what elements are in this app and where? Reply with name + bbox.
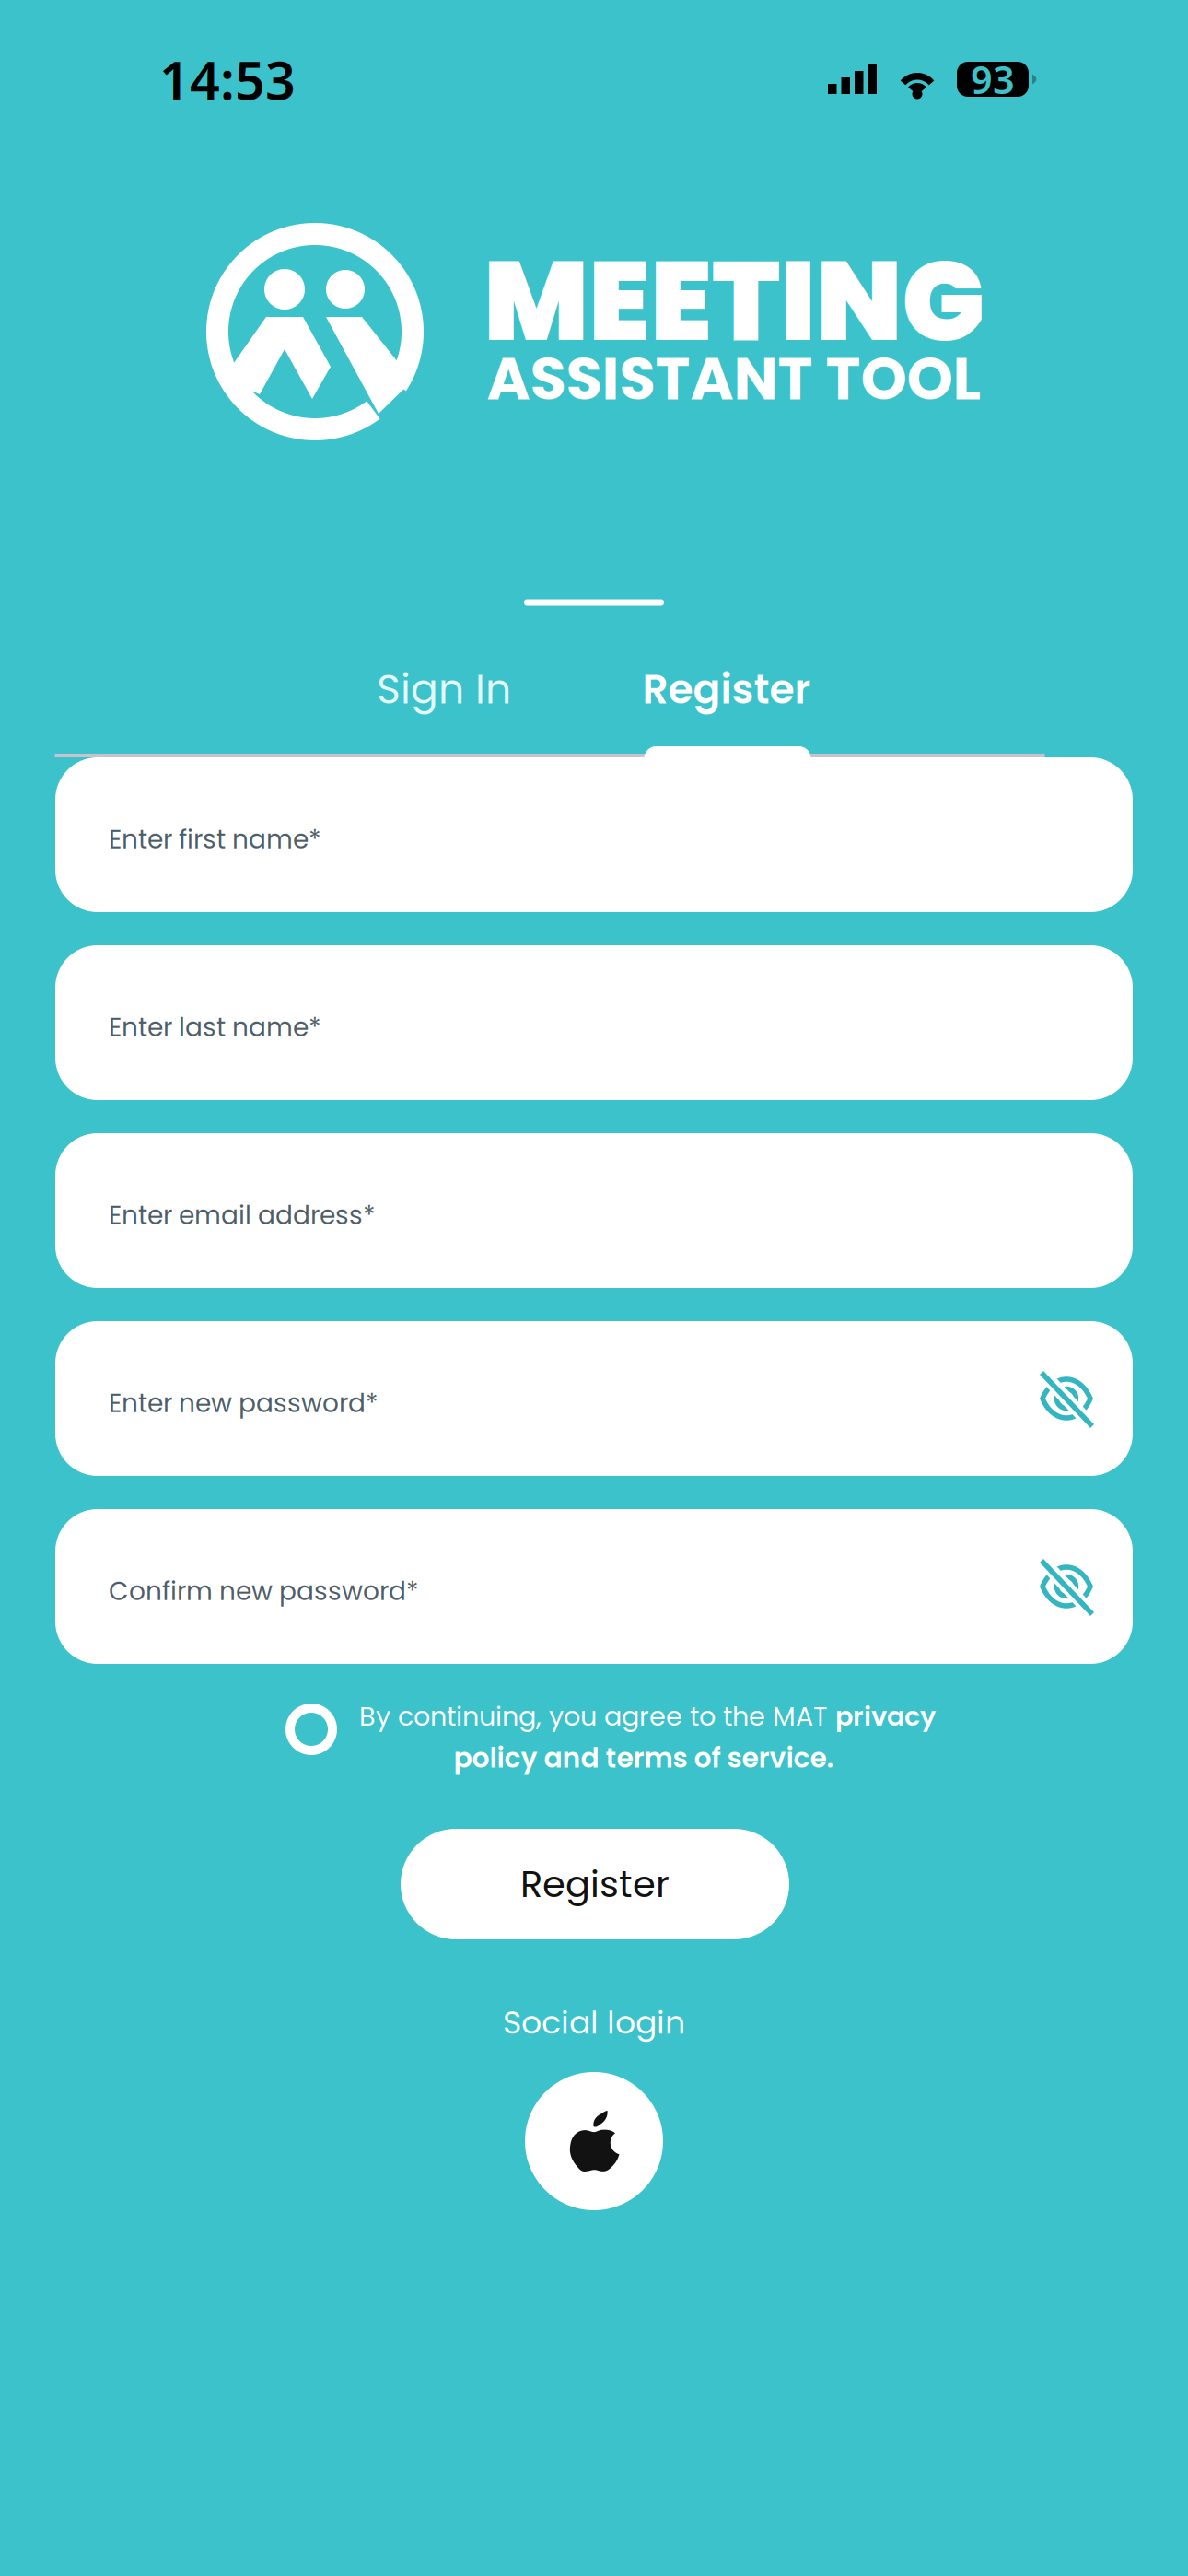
staticText: Sign In: [377, 661, 511, 718]
button[interactable]: Sign in with Apple: [525, 2072, 663, 2210]
staticText: 14:53: [159, 44, 296, 114]
button[interactable]: Enter new password*: [55, 1321, 1133, 1476]
staticText: Enter email address*: [109, 1197, 376, 1233]
button[interactable]: Confirm new password*: [55, 1509, 1133, 1664]
staticText: MEETING: [483, 224, 984, 379]
staticText: Social login: [503, 2000, 685, 2045]
staticText: By continuing, you agree to the MAT: [359, 1698, 835, 1735]
staticText: privacy: [835, 1698, 936, 1735]
staticText: 93: [971, 54, 1015, 105]
button[interactable]: Enter first name*: [55, 757, 1133, 912]
button[interactable]: Register: [598, 645, 856, 733]
staticText: Register: [642, 661, 811, 718]
staticText: ASSISTANT TOOL: [487, 337, 981, 420]
button[interactable]: Enter last name*: [55, 945, 1133, 1100]
staticText: policy and terms of service.: [454, 1739, 834, 1777]
staticText: Enter last name*: [109, 1009, 321, 1045]
staticText: Enter new password*: [109, 1385, 379, 1421]
staticText: Register: [520, 1858, 670, 1910]
button[interactable]: Register: [401, 1829, 789, 1939]
staticText: Enter first name*: [109, 821, 321, 857]
staticText: Confirm new password*: [109, 1573, 419, 1609]
button[interactable]: By continuing, you agree to the MAT: [285, 1685, 945, 1774]
button[interactable]: Sign In: [315, 645, 573, 733]
button[interactable]: Enter email address*: [55, 1133, 1133, 1288]
